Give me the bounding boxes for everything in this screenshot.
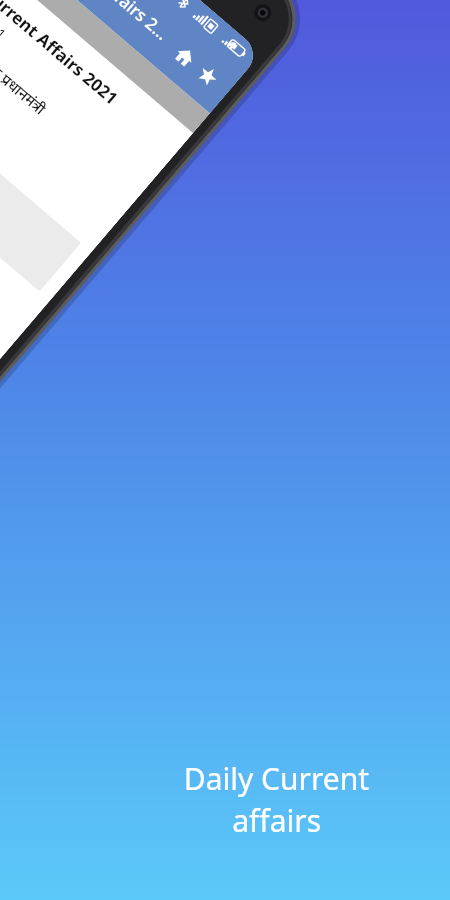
button[interactable]: Daily Current affairs app preview [0,0,450,900]
